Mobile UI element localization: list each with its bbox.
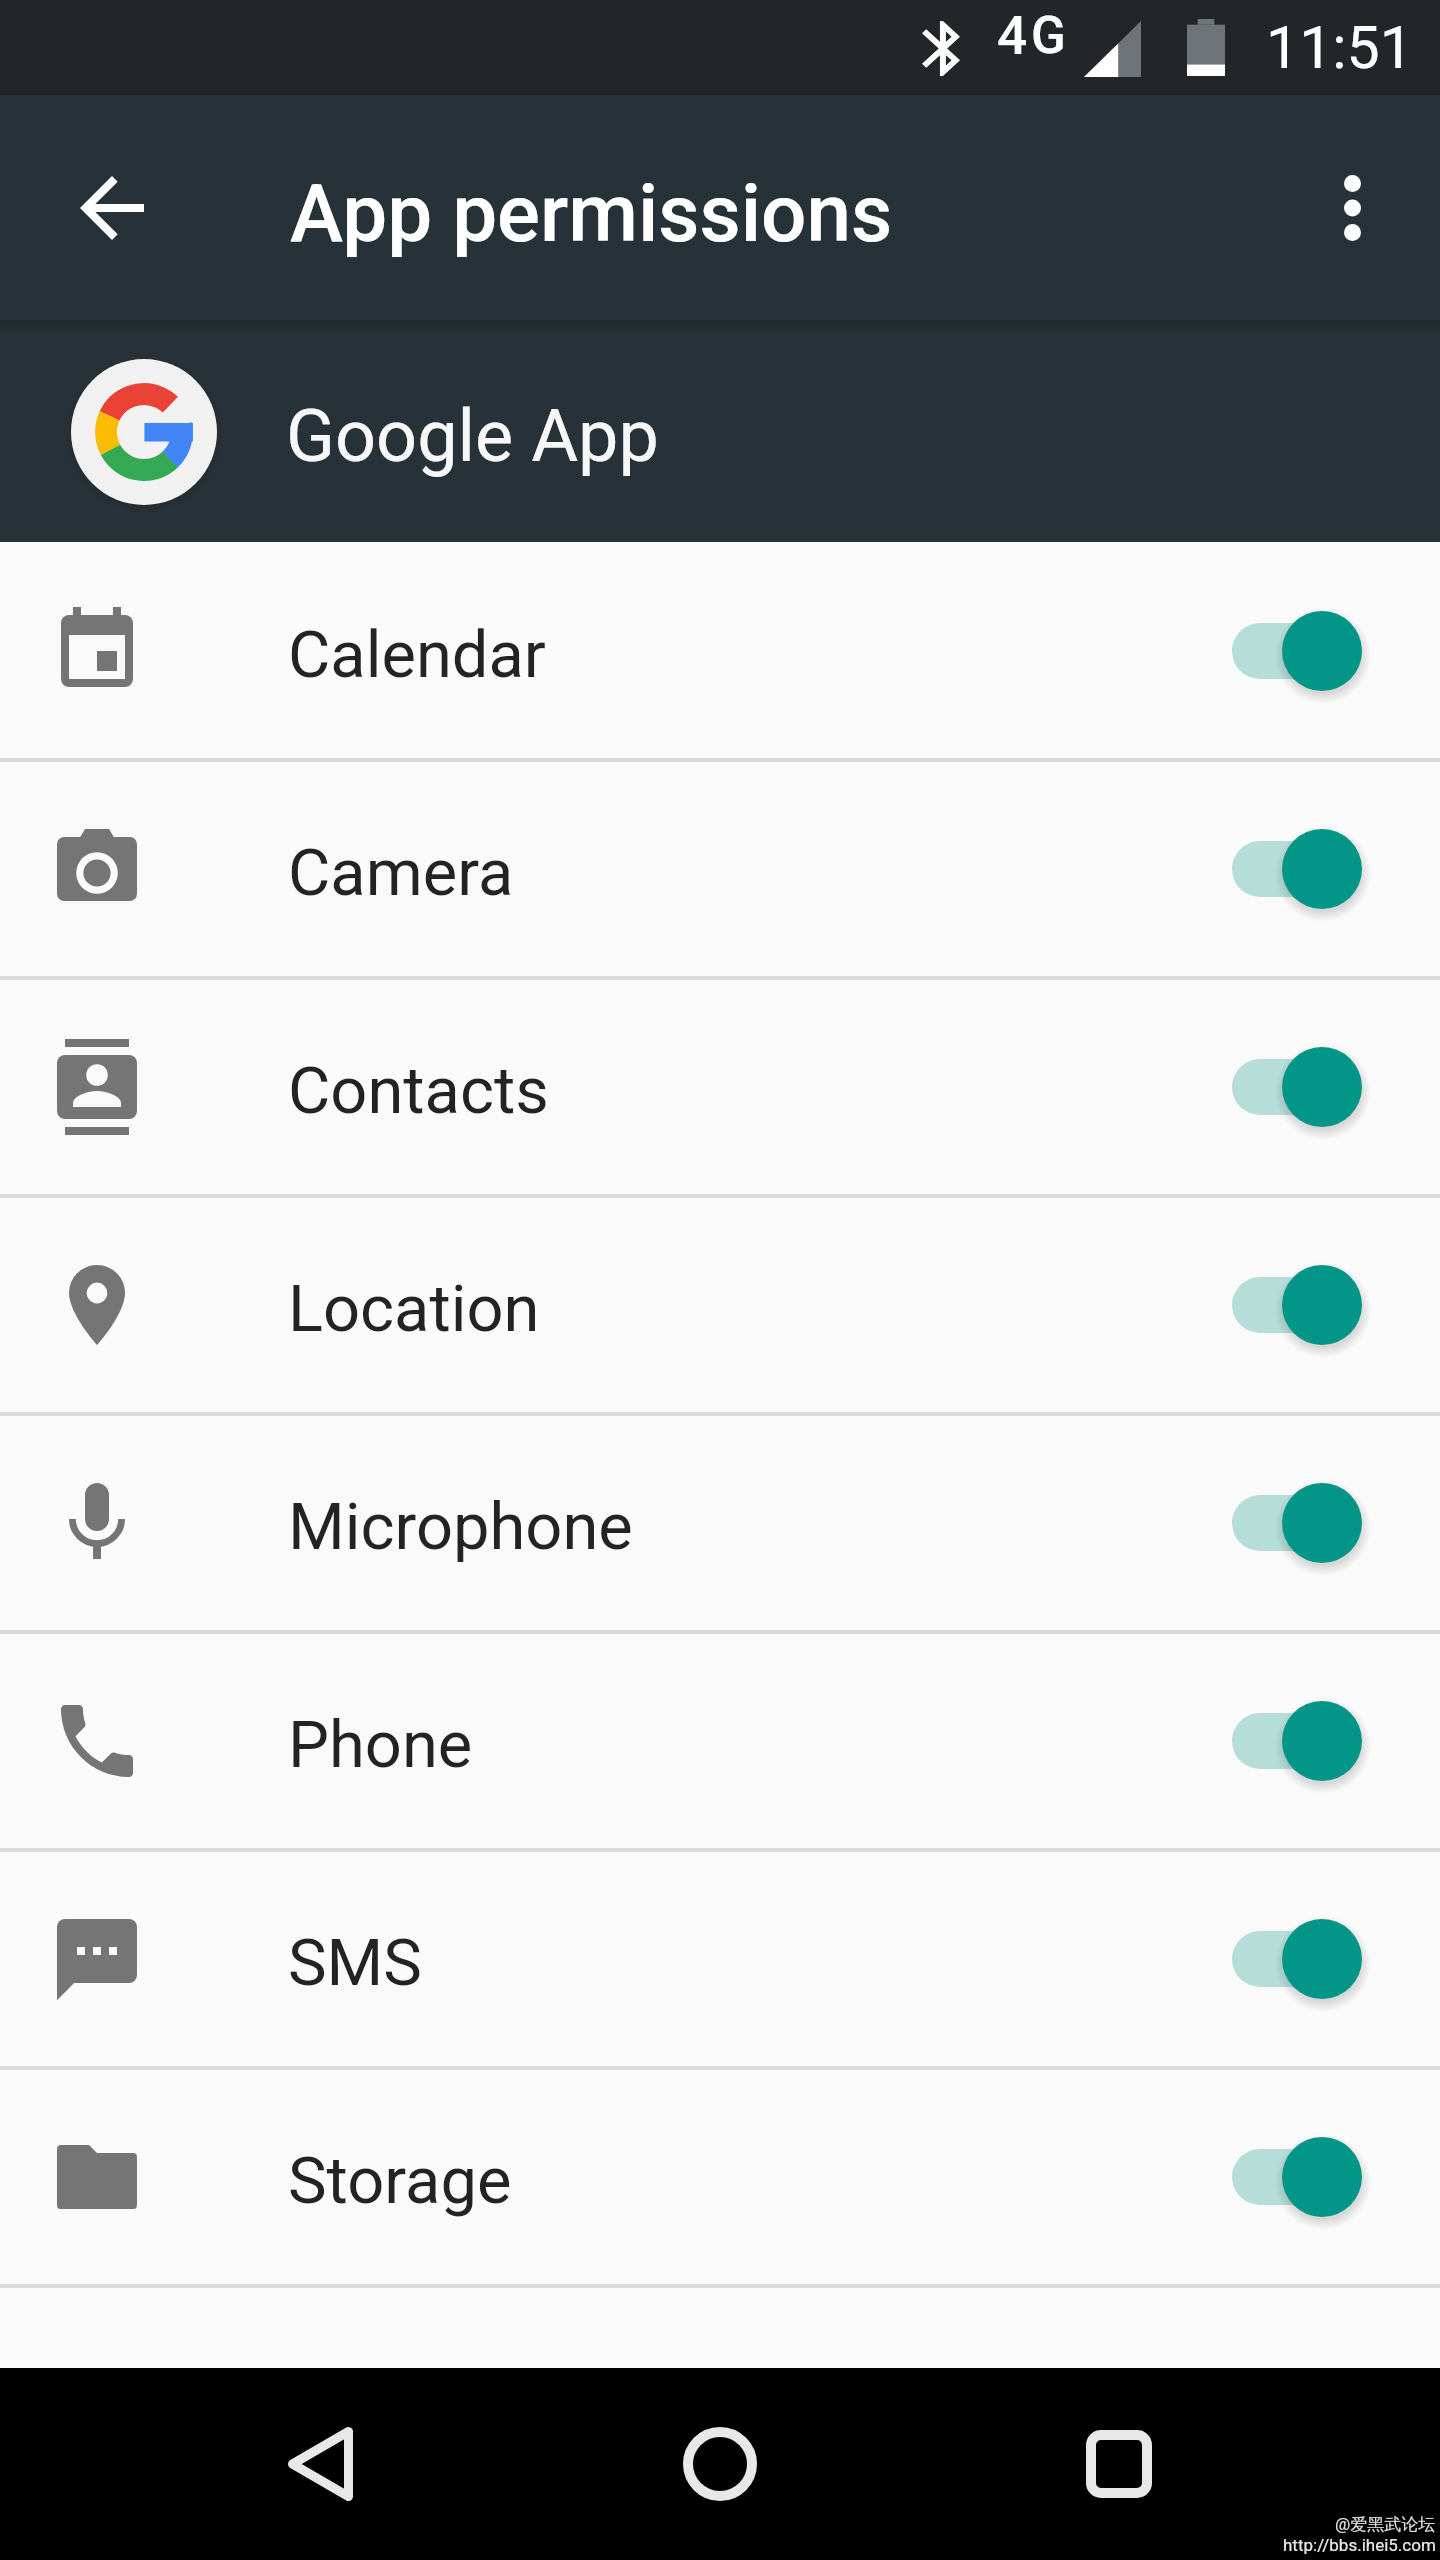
button[interactable]: More options — [1280, 136, 1424, 280]
button[interactable]: Recent apps — [1047, 2392, 1191, 2536]
button[interactable]: Navigate up — [32, 128, 192, 288]
staticText: Calendar — [288, 617, 546, 693]
staticText: Microphone — [288, 1489, 633, 1565]
button[interactable]: Phone permission, on — [1232, 1691, 1362, 1791]
button[interactable]: Location — [0, 1198, 1440, 1412]
staticText: 11:51 — [1266, 13, 1413, 82]
staticText: App permissions — [290, 167, 893, 261]
button[interactable]: Contacts — [0, 980, 1440, 1194]
staticText: Location — [288, 1271, 540, 1347]
button[interactable]: Google App — [0, 320, 1440, 544]
button[interactable]: Camera — [0, 762, 1440, 976]
staticText: Google App — [286, 394, 659, 478]
staticText: G — [1031, 6, 1066, 66]
staticText: Phone — [288, 1707, 473, 1783]
staticText: Storage — [288, 2143, 512, 2219]
staticText: http://bbs.ihei5.com — [1283, 2535, 1436, 2555]
button[interactable]: Storage permission, on — [1232, 2127, 1362, 2227]
button[interactable]: Microphone — [0, 1416, 1440, 1630]
staticText: 4 — [997, 5, 1028, 67]
button[interactable]: Contacts permission, on — [1232, 1037, 1362, 1137]
staticText: @爱黑武论坛 — [1335, 2514, 1436, 2535]
button[interactable]: Calendar permission, on — [1232, 601, 1362, 701]
button[interactable]: Calendar — [0, 544, 1440, 758]
button[interactable]: Home — [648, 2392, 792, 2536]
staticText: SMS — [288, 1925, 422, 2001]
button[interactable]: Microphone permission, on — [1232, 1473, 1362, 1573]
button[interactable]: SMS — [0, 1852, 1440, 2066]
button[interactable]: Location permission, on — [1232, 1255, 1362, 1355]
staticText: Contacts — [288, 1053, 549, 1129]
button[interactable]: Phone — [0, 1634, 1440, 1848]
staticText: Camera — [288, 835, 514, 911]
button[interactable]: Storage — [0, 2070, 1440, 2284]
button[interactable]: Camera permission, on — [1232, 819, 1362, 919]
button[interactable]: SMS permission, on — [1232, 1909, 1362, 2009]
button[interactable]: Back — [248, 2392, 392, 2536]
